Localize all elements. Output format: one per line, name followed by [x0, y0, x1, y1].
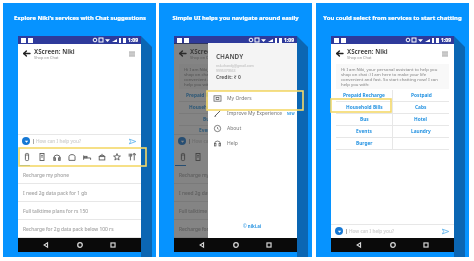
staticText: How can I help you? [192, 138, 237, 145]
button[interactable]: Menu [439, 48, 450, 59]
button[interactable]: Laundry [236, 126, 292, 134]
button[interactable]: Burger [336, 138, 392, 149]
button[interactable]: Help [208, 136, 297, 151]
button[interactable]: Back [196, 239, 208, 251]
button[interactable]: Assistant [178, 137, 186, 145]
button[interactable]: Hotel [393, 114, 449, 125]
button[interactable]: Full talktime plans for rs 150 [174, 202, 297, 220]
staticText: Hotel [414, 116, 428, 123]
button[interactable]: Send [127, 136, 137, 146]
staticText: Events [356, 128, 372, 135]
button[interactable]: Bills [36, 151, 48, 163]
staticText: How can I help you? [349, 228, 394, 235]
button[interactable]: Recharge for 2g data pack below 100 rs [174, 220, 297, 238]
button[interactable]: Back [353, 239, 365, 251]
button[interactable]: I need 2g data pack for 1 gb [18, 184, 141, 202]
button[interactable]: Events [179, 126, 235, 134]
button[interactable]: Events [336, 126, 392, 137]
button[interactable]: Bus [179, 114, 235, 125]
staticText: Full talktime plans for rs 150 [179, 208, 244, 215]
button[interactable]: Cabs [236, 102, 292, 113]
staticText: Recharge my phone [179, 172, 226, 179]
button[interactable]: Prepaid Recharge [336, 90, 392, 101]
staticText: 1:09 [284, 37, 294, 44]
staticText: Credit: ₹ 0 [216, 74, 241, 81]
button[interactable]: Recharge for 2g data pack below 100 rs [18, 220, 141, 238]
button[interactable]: I need 2g data pack for 1 gb [174, 184, 297, 202]
button[interactable]: Laundry [393, 126, 449, 137]
staticText: Recharge for 2g data pack below 100 rs [23, 226, 114, 233]
button[interactable]: Music [51, 151, 63, 163]
button[interactable]: Household Bills [179, 102, 235, 113]
staticText: I need 2g data pack for 1 gb [179, 190, 244, 197]
button[interactable]: Back [40, 239, 52, 251]
button[interactable]: Assistant [335, 227, 343, 235]
staticText: Cabs [415, 104, 427, 111]
button[interactable]: Postpaid [236, 90, 292, 101]
button[interactable]: Food [126, 151, 138, 163]
button[interactable]: My Orders [208, 91, 297, 106]
button[interactable]: Home [74, 239, 86, 251]
button[interactable]: Send [440, 226, 450, 236]
staticText: Prepaid Recharge [186, 92, 228, 99]
button[interactable]: Cake [96, 151, 108, 163]
staticText: Shop on Chat [34, 55, 59, 60]
staticText: About [227, 125, 242, 132]
button[interactable]: Back [335, 49, 344, 58]
button[interactable]: Recharge my phone [174, 166, 297, 184]
button[interactable]: Recharge [21, 151, 33, 163]
staticText: Recharge my phone [23, 172, 70, 179]
staticText: 1:09 [441, 37, 451, 44]
button[interactable]: Prepaid Recharge [179, 90, 235, 101]
button[interactable]: Fashion [66, 151, 78, 163]
button[interactable]: Back [178, 49, 187, 58]
staticText: Cabs [258, 104, 270, 111]
button[interactable]: Events [111, 151, 123, 163]
staticText: Shop on Chat [190, 55, 215, 60]
staticText: Bus [360, 116, 369, 123]
button[interactable]: Cabs [393, 102, 449, 113]
button[interactable]: Back [22, 49, 31, 58]
button[interactable]: Postpaid [393, 90, 449, 101]
button[interactable]: Bus [336, 114, 392, 125]
staticText: XScreen: Niki [34, 47, 75, 55]
staticText: Explore Niki's services with Chat sugges… [14, 14, 146, 22]
button[interactable]: Recents [107, 239, 119, 251]
button[interactable]: Recents [420, 239, 432, 251]
staticText: XScreen: Niki [190, 47, 231, 55]
button[interactable]: Home [230, 239, 242, 251]
button[interactable]: Recharge [177, 151, 189, 163]
staticText: You could select from services to start … [323, 14, 462, 22]
staticText: Postpaid [411, 92, 432, 99]
staticText: Shop on Chat [347, 55, 372, 60]
button[interactable]: Recharge my phone [18, 166, 141, 184]
button[interactable]: Bills [192, 151, 204, 163]
button[interactable]: Household Bills [336, 102, 392, 113]
button[interactable]: Full talktime plans for rs 150 [18, 202, 141, 220]
staticText: Events [199, 127, 215, 134]
button[interactable]: Improve My Experience [208, 106, 297, 121]
staticText: How can I help you? [36, 138, 81, 145]
button[interactable]: Assistant [22, 137, 30, 145]
staticText: nsk.chandy@gmail.com [216, 63, 254, 68]
staticText: Simple UI helps you navigate around easi… [172, 14, 299, 22]
button[interactable]: About [208, 121, 297, 136]
staticText: Bus [203, 116, 212, 123]
button[interactable]: Recents [263, 239, 275, 251]
button[interactable]: Home [387, 239, 399, 251]
button[interactable]: Menu [126, 48, 137, 59]
staticText: Household Bills [189, 104, 226, 111]
button[interactable]: Hotel [236, 114, 292, 125]
staticText: Improve My Experience [227, 110, 283, 117]
button[interactable]: Hotel [81, 151, 93, 163]
button[interactable]: Music [207, 151, 219, 163]
